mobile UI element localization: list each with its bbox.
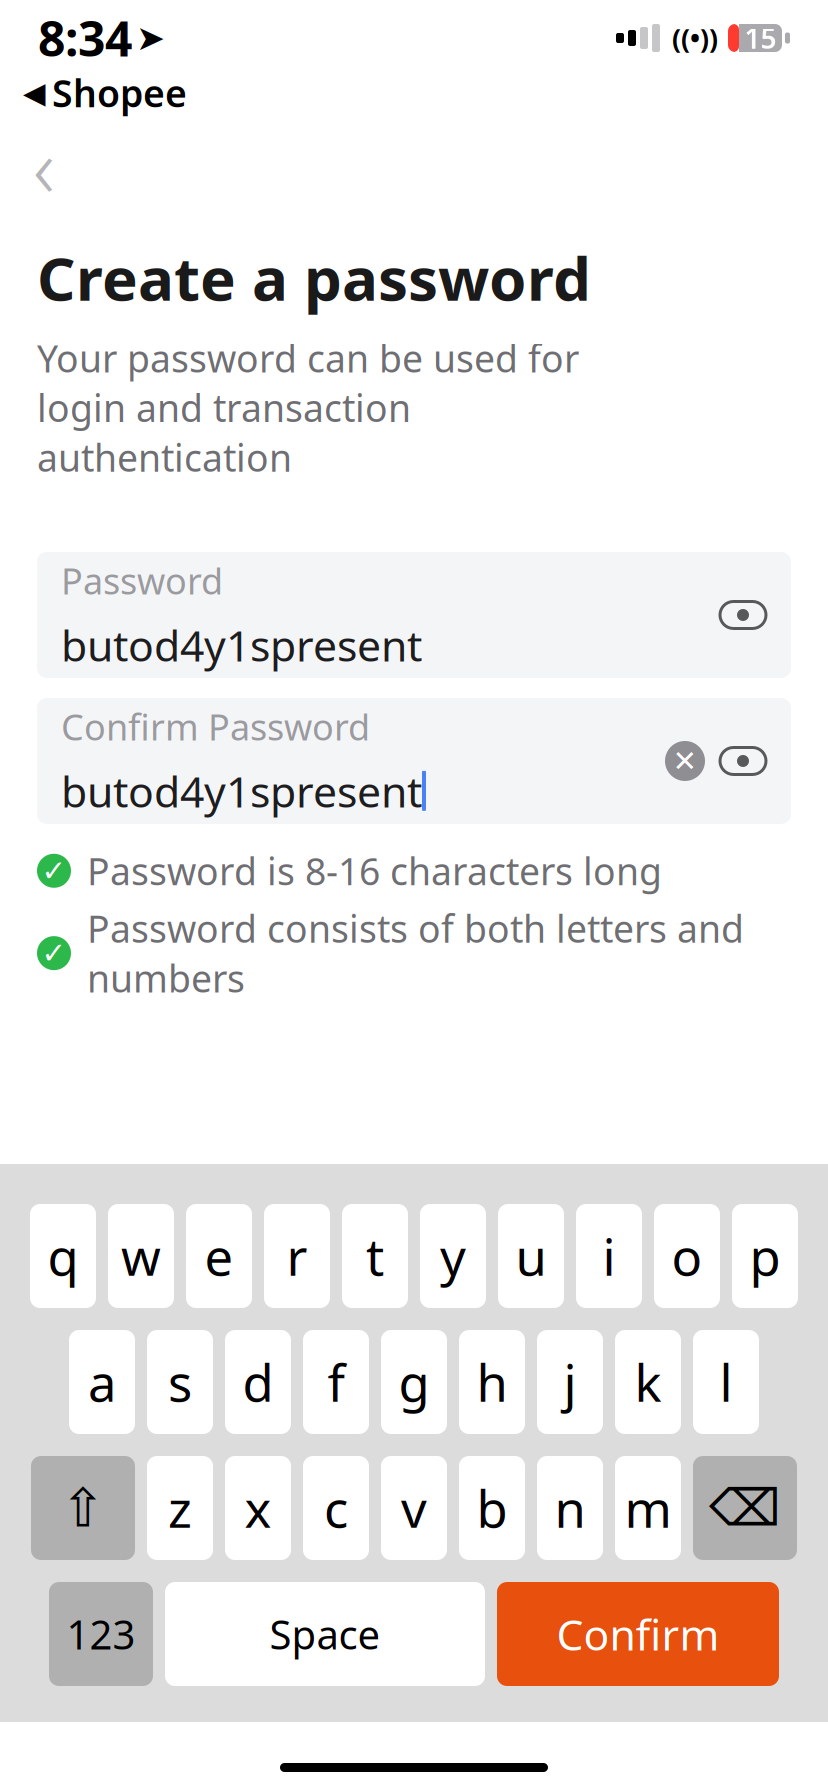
staticText: butod4y1spresent	[61, 763, 422, 819]
staticText: butod4y1spresent	[61, 617, 422, 673]
staticText: h	[476, 1348, 507, 1416]
staticText: y	[440, 1222, 466, 1290]
staticText: Create a password	[37, 238, 591, 317]
button[interactable]: Confirm	[497, 1582, 779, 1686]
button[interactable]: s	[147, 1330, 213, 1434]
staticText: m	[624, 1474, 671, 1542]
staticText: ⇧	[60, 1478, 105, 1538]
button[interactable]: Shift	[31, 1456, 135, 1560]
staticText: t	[366, 1222, 384, 1290]
staticText: ◀	[23, 76, 46, 109]
button[interactable]: w	[108, 1204, 174, 1308]
staticText: s	[168, 1348, 192, 1416]
staticText: j	[563, 1348, 576, 1416]
button[interactable]: l	[693, 1330, 759, 1434]
button[interactable]: z	[147, 1456, 213, 1560]
button[interactable]: y	[420, 1204, 486, 1308]
button[interactable]: i	[576, 1204, 642, 1308]
button[interactable]: Back to Shopee	[19, 64, 191, 122]
button[interactable]: Clear text	[657, 725, 713, 797]
staticText: p	[749, 1222, 780, 1290]
button[interactable]: x	[225, 1456, 291, 1560]
staticText: ((•))	[672, 20, 718, 56]
button[interactable]: Show password	[713, 579, 773, 651]
staticText: g	[398, 1348, 429, 1416]
button[interactable]: h	[459, 1330, 525, 1434]
button[interactable]: e	[186, 1204, 252, 1308]
staticText: w	[121, 1222, 161, 1290]
staticText: ✓	[41, 854, 66, 887]
staticText: Your password can be used for login and …	[37, 333, 579, 482]
staticText: ⌫	[709, 1479, 781, 1537]
button[interactable]: j	[537, 1330, 603, 1434]
button[interactable]: k	[615, 1330, 681, 1434]
staticText: 8:34	[38, 6, 132, 70]
button[interactable]: o	[654, 1204, 720, 1308]
button[interactable]: v	[381, 1456, 447, 1560]
staticText: Password	[61, 557, 223, 605]
button[interactable]: 123	[49, 1582, 153, 1686]
button[interactable]: u	[498, 1204, 564, 1308]
staticText: ➤	[136, 18, 165, 58]
button[interactable]: Space	[165, 1582, 485, 1686]
button[interactable]: r	[264, 1204, 330, 1308]
staticText: d	[242, 1348, 273, 1416]
staticText: Password is 8-16 characters long	[87, 846, 662, 896]
staticText: u	[515, 1222, 546, 1290]
staticText: Confirm	[556, 1606, 719, 1662]
staticText: Password consists of both letters and nu…	[87, 904, 744, 1003]
button[interactable]: p	[732, 1204, 798, 1308]
button[interactable]: m	[615, 1456, 681, 1560]
staticText: q	[47, 1222, 78, 1290]
staticText: a	[88, 1348, 116, 1416]
staticText: ‹	[33, 111, 55, 220]
staticText: x	[244, 1474, 271, 1542]
staticText: ✕	[672, 744, 697, 778]
staticText: l	[719, 1348, 732, 1416]
staticText: ✓	[41, 936, 66, 970]
staticText: 123	[66, 1607, 135, 1660]
button[interactable]: g	[381, 1330, 447, 1434]
staticText: Shopee	[52, 68, 187, 118]
button[interactable]: c	[303, 1456, 369, 1560]
staticText: b	[476, 1474, 507, 1542]
button[interactable]: a	[69, 1330, 135, 1434]
button[interactable]: n	[537, 1456, 603, 1560]
button[interactable]: b	[459, 1456, 525, 1560]
button[interactable]: t	[342, 1204, 408, 1308]
staticText: v	[401, 1474, 427, 1542]
button[interactable]: Back	[7, 128, 81, 204]
staticText: k	[634, 1348, 661, 1416]
button[interactable]: Delete	[693, 1456, 797, 1560]
staticText: i	[602, 1222, 615, 1290]
button[interactable]: q	[30, 1204, 96, 1308]
staticText: Confirm Password	[61, 703, 370, 751]
staticText: c	[324, 1474, 348, 1542]
staticText: 15	[744, 19, 776, 57]
staticText: r	[286, 1222, 307, 1290]
staticText: z	[168, 1474, 192, 1542]
staticText: n	[554, 1474, 585, 1542]
staticText: e	[204, 1222, 233, 1290]
staticText: o	[671, 1222, 702, 1290]
button[interactable]: f	[303, 1330, 369, 1434]
staticText: Space	[269, 1607, 380, 1660]
button[interactable]: d	[225, 1330, 291, 1434]
button[interactable]: Show password	[713, 725, 773, 797]
staticText: f	[327, 1348, 344, 1416]
